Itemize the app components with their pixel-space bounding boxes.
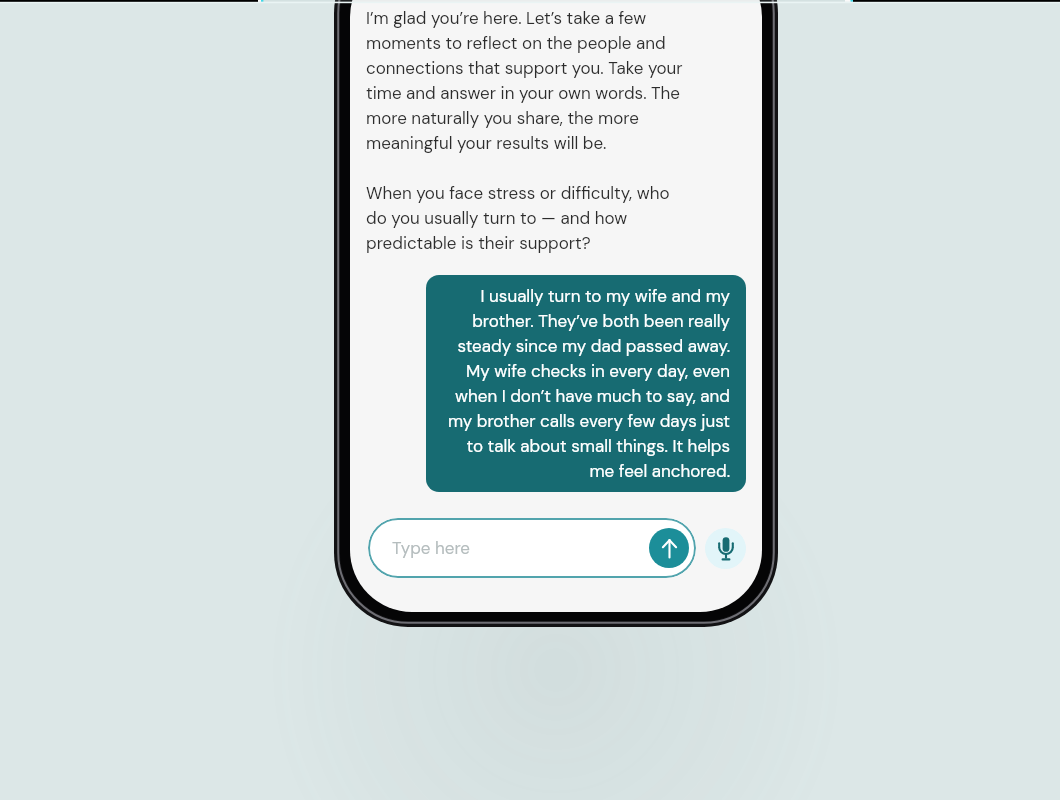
button[interactable]: Voice input: [705, 528, 746, 569]
button[interactable]: Send: [649, 528, 689, 568]
staticText: I’m glad you’re here. Let’s take a few m…: [366, 7, 686, 254]
button[interactable]: I usually turn to my wife and my brother…: [426, 275, 746, 492]
button[interactable]: Type here: [368, 518, 696, 578]
staticText: Type here: [392, 537, 471, 559]
staticText: I usually turn to my wife and my brother…: [446, 285, 730, 482]
